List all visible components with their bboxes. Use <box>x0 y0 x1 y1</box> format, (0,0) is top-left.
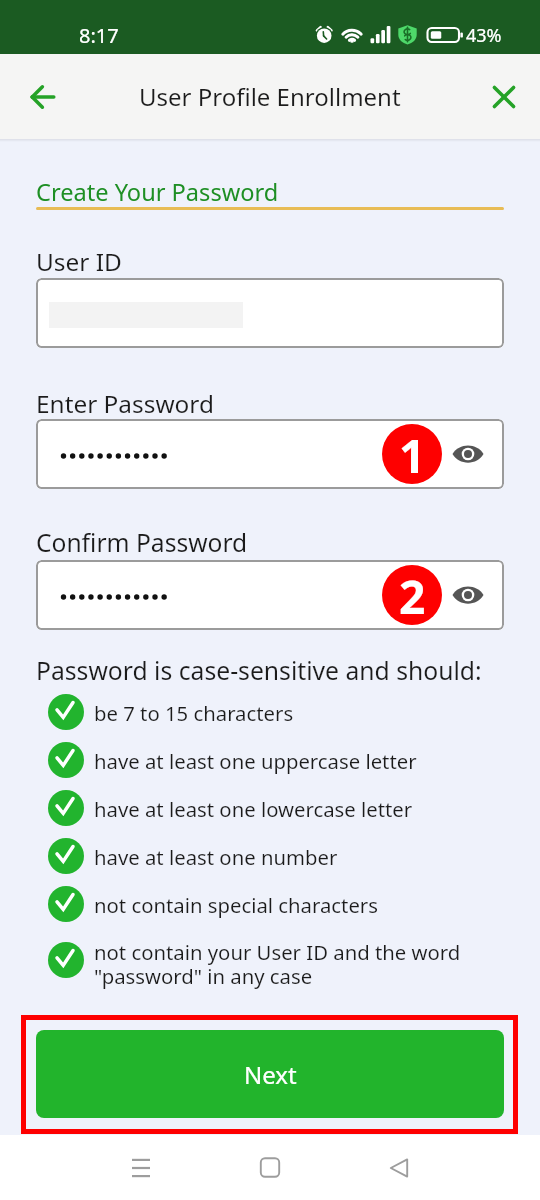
staticText: User Profile Enrollment <box>139 80 401 113</box>
staticText: have at least one uppercase letter <box>94 747 417 775</box>
button[interactable]: Show password <box>446 573 490 617</box>
staticText: Password is case-sensitive and should: <box>36 654 482 688</box>
button[interactable] <box>36 419 504 489</box>
button[interactable]: Back <box>18 73 66 121</box>
staticText: 8:17 <box>79 22 119 49</box>
staticText: 1 <box>399 424 426 484</box>
button[interactable]: Back <box>375 1144 423 1192</box>
staticText: 43% <box>466 23 502 48</box>
staticText: User ID <box>36 245 122 278</box>
staticText: Create Your Password <box>36 176 279 208</box>
staticText: 2 <box>399 565 426 625</box>
button[interactable]: Home <box>246 1144 294 1192</box>
button[interactable]: Show password <box>446 432 490 476</box>
staticText: be 7 to 15 characters <box>94 699 294 727</box>
staticText: not contain special characters <box>94 891 378 919</box>
staticText: Next <box>244 1058 297 1091</box>
staticText: have at least one lowercase letter <box>94 795 413 823</box>
staticText: Confirm Password <box>36 526 248 560</box>
button[interactable] <box>36 560 504 630</box>
button[interactable] <box>36 278 504 348</box>
button[interactable]: Next <box>36 1030 504 1118</box>
staticText: Enter Password <box>36 387 214 420</box>
button[interactable]: Close <box>482 75 526 119</box>
staticText: not contain your User ID and the word "p… <box>94 938 461 990</box>
button[interactable]: Recent apps <box>117 1144 165 1192</box>
staticText: have at least one number <box>94 843 338 871</box>
